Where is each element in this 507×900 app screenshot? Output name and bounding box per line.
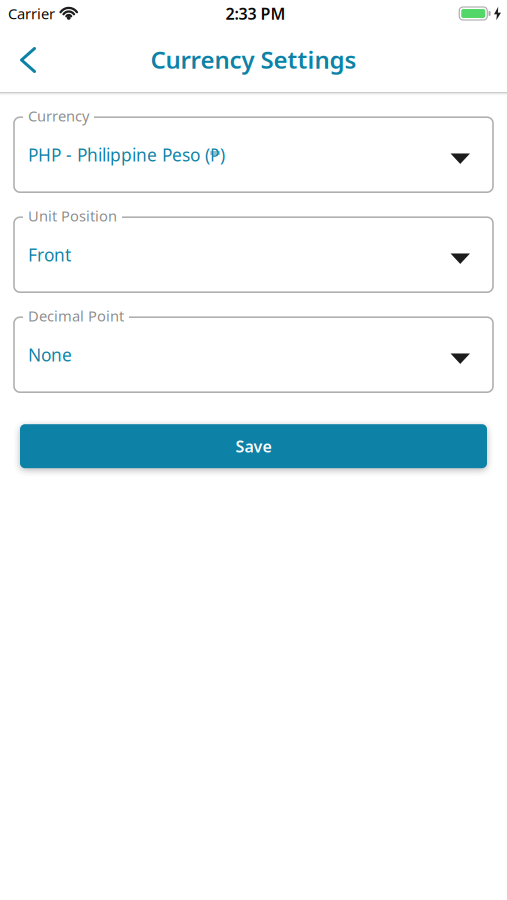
button[interactable]: None	[14, 309, 493, 392]
staticText: Currency	[28, 106, 89, 126]
button[interactable]: Front	[14, 209, 493, 292]
staticText: Carrier	[8, 4, 55, 23]
staticText: 2:33 PM	[225, 3, 285, 24]
button[interactable]: Save	[20, 424, 487, 468]
staticText: Save	[235, 436, 271, 457]
button[interactable]: Back	[0, 27, 44, 92]
staticText: Currency Settings	[150, 44, 356, 75]
staticText: Decimal Point	[28, 306, 124, 326]
button[interactable]: PHP - Philippine Peso (₱)	[14, 109, 493, 192]
staticText: None	[28, 343, 72, 366]
staticText: Front	[28, 243, 71, 266]
staticText: PHP - Philippine Peso (₱)	[28, 143, 225, 166]
staticText: Unit Position	[28, 206, 117, 226]
